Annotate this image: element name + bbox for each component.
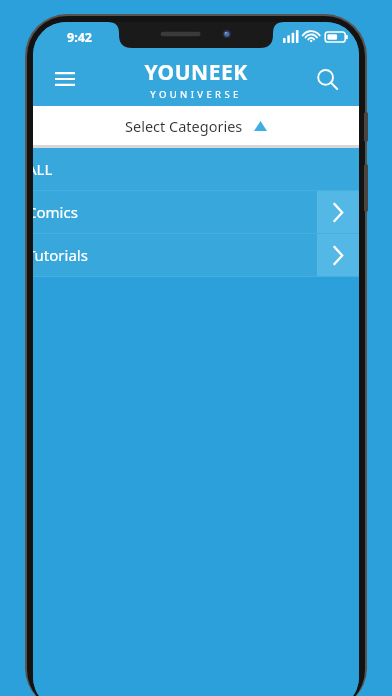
staticText: 9:42 xyxy=(67,29,92,46)
staticText: Select Categories xyxy=(125,116,243,136)
staticText: YOUNIVERSE xyxy=(150,88,242,101)
button[interactable]: Comics xyxy=(33,191,359,233)
button[interactable]: Expand Tutorials xyxy=(317,234,359,276)
staticText: ALL xyxy=(33,159,53,179)
button[interactable]: Tutorials xyxy=(33,234,359,276)
staticText: Tutorials xyxy=(33,245,88,265)
button[interactable]: Search xyxy=(305,57,349,101)
button[interactable]: Expand Comics xyxy=(317,191,359,233)
button[interactable]: Select Categories xyxy=(33,106,359,145)
staticText: Comics xyxy=(33,202,78,222)
staticText: YOUNEEK xyxy=(144,58,248,87)
button[interactable]: ALL xyxy=(33,148,359,190)
button[interactable]: Open navigation menu xyxy=(43,57,87,101)
